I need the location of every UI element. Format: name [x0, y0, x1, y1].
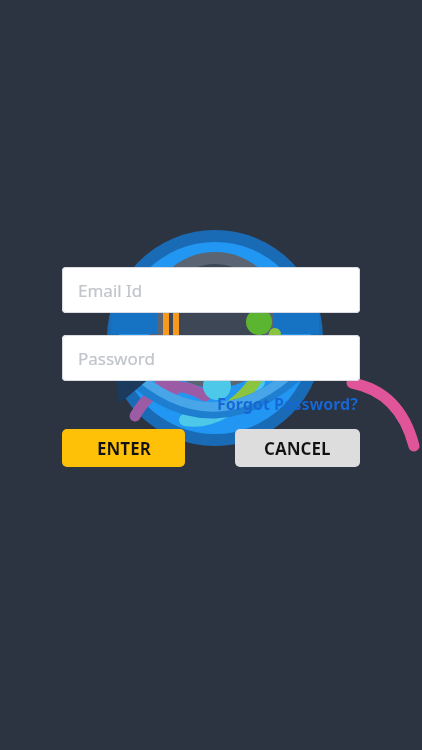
button[interactable]: Email Id	[62, 267, 360, 313]
staticText: Email Id	[78, 279, 143, 302]
button[interactable]: CANCEL	[235, 429, 360, 467]
button[interactable]: ENTER	[62, 429, 185, 467]
button[interactable]: Password	[62, 335, 360, 381]
staticText: ENTER	[97, 437, 151, 460]
staticText: Forgot Password?	[217, 393, 358, 415]
button[interactable]: Forgot Password?	[215, 391, 360, 417]
staticText: CANCEL	[264, 437, 331, 460]
staticText: Password	[78, 347, 155, 370]
